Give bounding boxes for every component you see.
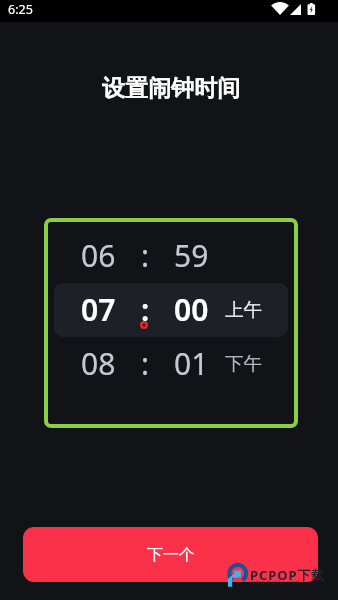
staticText: 00 (174, 289, 209, 330)
button[interactable]: 07 (44, 282, 298, 336)
staticText: www.pcpop.com (251, 579, 301, 586)
staticText: 下一个 (147, 545, 195, 565)
staticText: : (141, 289, 150, 330)
staticText: 设置闹钟时间 (2, 74, 338, 103)
button[interactable]: 06 (44, 228, 298, 282)
button[interactable]: 下一个 (23, 527, 318, 582)
other: Battery charging (307, 3, 316, 15)
staticText: 06 (81, 235, 116, 276)
staticText: 6:25 (8, 1, 33, 18)
staticText: : (141, 235, 150, 276)
staticText: 下午 (225, 352, 262, 375)
staticText: 01 (174, 343, 209, 384)
button[interactable]: 08 (44, 336, 298, 390)
other: Wi-Fi signal (273, 3, 287, 15)
staticText: 08 (81, 343, 116, 384)
other: Mobile signal (290, 4, 301, 15)
staticText: PCPOP下载 (250, 566, 326, 584)
staticText: 59 (174, 235, 209, 276)
staticText: : (141, 343, 150, 384)
staticText: 07 (81, 289, 116, 330)
staticText: 上午 (225, 298, 262, 321)
